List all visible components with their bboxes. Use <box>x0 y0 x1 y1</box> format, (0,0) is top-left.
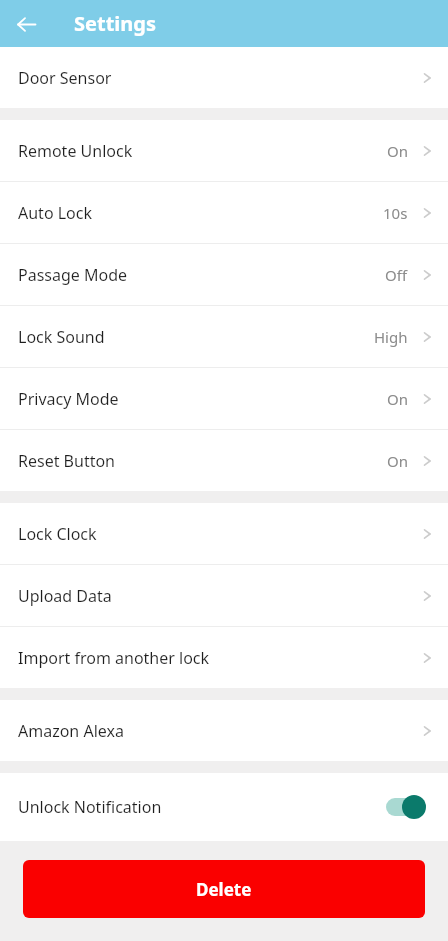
button[interactable]: Back <box>7 5 45 43</box>
button[interactable]: Amazon Alexa <box>0 700 448 761</box>
staticText: Delete <box>196 878 252 901</box>
button[interactable]: Unlock Notification <box>0 773 448 841</box>
button[interactable]: Unlock Notification toggle <box>386 795 426 819</box>
staticText: High <box>374 327 408 347</box>
button[interactable]: Passage Mode <box>0 244 448 305</box>
button[interactable]: Privacy Mode <box>0 368 448 429</box>
staticText: Lock Sound <box>18 326 374 348</box>
staticText: On <box>387 141 408 161</box>
staticText: Settings <box>74 10 156 37</box>
staticText: Privacy Mode <box>18 388 387 410</box>
staticText: Auto Lock <box>18 202 383 224</box>
staticText: Upload Data <box>18 585 422 607</box>
staticText: Import from another lock <box>18 647 422 669</box>
staticText: Reset Button <box>18 450 387 472</box>
button[interactable]: Door Sensor <box>0 47 448 108</box>
button[interactable]: Delete <box>23 860 425 918</box>
button[interactable]: Lock Sound <box>0 306 448 367</box>
staticText: Door Sensor <box>18 67 422 89</box>
button[interactable]: Upload Data <box>0 565 448 626</box>
staticText: Passage Mode <box>18 264 385 286</box>
staticText: Unlock Notification <box>18 796 386 818</box>
staticText: On <box>387 389 408 409</box>
staticText: 10s <box>383 203 408 223</box>
staticText: Off <box>385 265 408 285</box>
button[interactable]: Lock Clock <box>0 503 448 564</box>
staticText: Amazon Alexa <box>18 720 422 742</box>
staticText: Lock Clock <box>18 523 422 545</box>
button[interactable]: Auto Lock <box>0 182 448 243</box>
button[interactable]: Remote Unlock <box>0 120 448 181</box>
button[interactable]: Reset Button <box>0 430 448 491</box>
staticText: Remote Unlock <box>18 140 387 162</box>
staticText: On <box>387 451 408 471</box>
button[interactable]: Import from another lock <box>0 627 448 688</box>
